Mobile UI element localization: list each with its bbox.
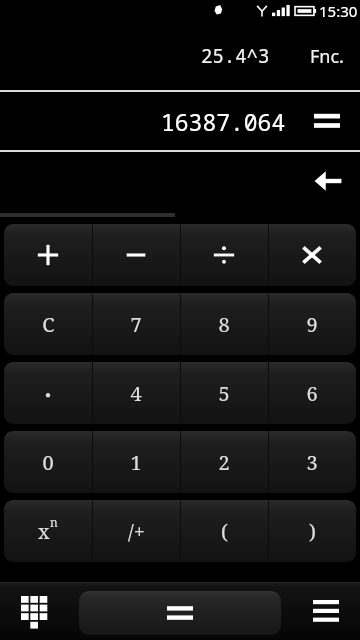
button[interactable]: ( xyxy=(180,500,268,562)
staticText: C xyxy=(42,311,55,338)
staticText: x xyxy=(38,518,50,545)
button[interactable]: 1 xyxy=(92,431,180,493)
staticText: 25.4^3 xyxy=(201,43,270,69)
button[interactable]: ) xyxy=(268,500,356,562)
button[interactable]: /+ xyxy=(92,500,180,562)
staticText: 16387.064 xyxy=(161,106,286,137)
button[interactable] xyxy=(4,224,92,286)
button[interactable]: 6 xyxy=(268,362,356,424)
staticText: 7 xyxy=(130,311,142,338)
button[interactable]: 8 xyxy=(180,293,268,355)
staticText: 5 xyxy=(218,380,230,407)
button[interactable]: Fnc. xyxy=(304,38,350,75)
staticText: 6 xyxy=(306,380,318,407)
button[interactable]: Menu xyxy=(300,585,352,637)
button[interactable]: Equals xyxy=(310,104,344,138)
button[interactable]: 3 xyxy=(268,431,356,493)
staticText: ) xyxy=(309,518,316,545)
button[interactable]: 0 xyxy=(4,431,92,493)
button[interactable]: 7 xyxy=(92,293,180,355)
staticText: Fnc. xyxy=(310,44,344,69)
staticText: ( xyxy=(221,518,228,545)
staticText: 3 xyxy=(306,449,318,476)
staticText: 8 xyxy=(218,311,230,338)
button[interactable] xyxy=(4,362,92,424)
staticText: 4 xyxy=(130,380,142,407)
staticText: n xyxy=(50,514,58,530)
staticText: /+ xyxy=(128,518,145,545)
staticText: 2 xyxy=(218,449,230,476)
button[interactable]: 2 xyxy=(180,431,268,493)
staticText: 9 xyxy=(306,311,318,338)
button[interactable]: 5 xyxy=(180,362,268,424)
staticText: 15:30 xyxy=(319,1,358,21)
button[interactable]: Equals xyxy=(79,591,281,635)
button[interactable]: Keypad xyxy=(8,585,60,637)
button[interactable] xyxy=(180,224,268,286)
button[interactable]: 9 xyxy=(268,293,356,355)
button[interactable]: 4 xyxy=(92,362,180,424)
button[interactable] xyxy=(268,224,356,286)
button[interactable] xyxy=(92,224,180,286)
button[interactable]: x xyxy=(4,500,92,562)
staticText: 0 xyxy=(42,449,54,476)
button[interactable]: C xyxy=(4,293,92,355)
button[interactable]: Backspace xyxy=(308,161,348,201)
staticText: 1 xyxy=(130,449,142,476)
